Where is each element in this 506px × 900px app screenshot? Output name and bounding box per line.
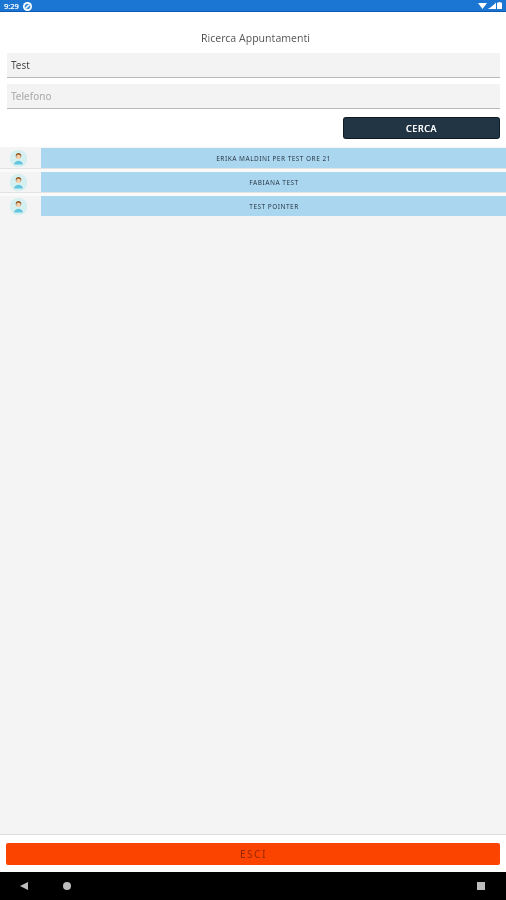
staticText: FABIANA TEST <box>249 178 299 187</box>
button[interactable]: Test <box>7 53 500 78</box>
staticText: CERCA <box>406 122 438 134</box>
button[interactable]: Back <box>10 872 38 900</box>
staticText: Ricerca Appuntamenti <box>201 31 311 45</box>
button[interactable]: CERCA <box>344 118 499 138</box>
button[interactable]: TEST POINTER <box>0 196 506 216</box>
button[interactable]: ERIKA MALDINI PER TEST ORE 21 <box>0 148 506 168</box>
button[interactable]: ESCI <box>6 843 500 865</box>
staticText: Telefono <box>11 89 52 103</box>
button[interactable]: FABIANA TEST <box>0 172 506 192</box>
staticText: ESCI <box>240 847 267 861</box>
staticText: Test <box>11 58 30 72</box>
button[interactable]: Home <box>53 872 81 900</box>
staticText: 9:29 <box>4 1 19 11</box>
button[interactable]: Recent apps <box>467 872 495 900</box>
staticText: TEST POINTER <box>249 202 299 211</box>
button[interactable]: Telefono <box>7 84 500 109</box>
staticText: ERIKA MALDINI PER TEST ORE 21 <box>216 154 331 163</box>
